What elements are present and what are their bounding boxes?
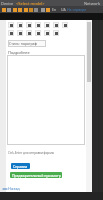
button[interactable]: Editor tool [35, 30, 41, 36]
button[interactable]: Editor tool [8, 22, 14, 28]
staticText: Ctrl+Enter для отправки формы [8, 151, 54, 155]
button[interactable]: Editor tool [44, 30, 50, 36]
staticText: Подробнее [8, 50, 30, 55]
button[interactable]: Editor tool [17, 22, 23, 28]
staticText: <Select model> [16, 1, 45, 6]
button[interactable]: Tool [1, 7, 6, 12]
button[interactable]: Tool [23, 7, 28, 12]
button[interactable]: Предварительный просмотр [10, 172, 62, 178]
button[interactable]: Editor tool [53, 30, 59, 36]
staticText: Device [1, 1, 14, 6]
staticText: Network [84, 1, 101, 6]
button[interactable]: Назад [3, 186, 20, 191]
button[interactable]: Tool [6, 7, 11, 12]
button[interactable]: Editor tool [8, 30, 14, 36]
button[interactable]: Tool [45, 7, 50, 12]
staticText: UA [61, 7, 66, 12]
staticText: Справка [13, 164, 28, 169]
staticText: Стиль: параграф [9, 41, 38, 46]
button[interactable]: Tool [17, 7, 22, 12]
button[interactable]: Справка [11, 163, 30, 169]
button[interactable]: Editor tool [62, 22, 68, 28]
button[interactable] [7, 55, 85, 145]
staticText: На сервере [67, 7, 87, 12]
button[interactable]: Editor tool [26, 30, 32, 36]
button[interactable]: Editor tool [53, 22, 59, 28]
button[interactable]: Стиль: параграф [8, 40, 46, 47]
staticText: Предварительный просмотр [12, 173, 61, 178]
staticText: En [52, 7, 57, 12]
button[interactable]: Tool [33, 7, 38, 12]
button[interactable]: Editor tool [44, 22, 50, 28]
button[interactable]: Editor tool [26, 22, 32, 28]
button[interactable]: Editor tool [35, 22, 41, 28]
button[interactable]: Tool [28, 7, 33, 12]
staticText: Назад [8, 186, 20, 191]
button[interactable]: Tool [40, 7, 45, 12]
button[interactable]: Editor tool [17, 30, 23, 36]
button[interactable]: Tool [12, 7, 17, 12]
